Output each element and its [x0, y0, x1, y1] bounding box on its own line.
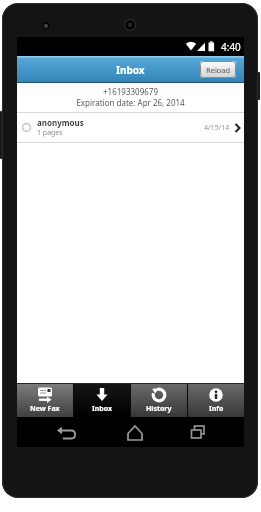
button[interactable]: Info: [188, 383, 244, 417]
staticText: Info: [209, 404, 224, 414]
staticText: New Fax: [30, 404, 60, 414]
button[interactable]: Inbox: [74, 383, 130, 417]
staticText: Inbox: [92, 404, 112, 414]
button[interactable]: Reload: [200, 61, 236, 78]
staticText: 4/15/14: [204, 123, 230, 133]
staticText: Expiration date: Apr 26, 2014: [17, 97, 244, 108]
staticText: anonymous: [37, 117, 84, 128]
button[interactable]: New Fax: [17, 383, 73, 417]
staticText: History: [146, 404, 172, 414]
button[interactable]: History: [131, 383, 187, 417]
staticText: 4:40: [221, 40, 241, 54]
staticText: Reload: [206, 65, 231, 75]
staticText: +16193309679: [17, 86, 244, 97]
staticText: Inbox: [116, 63, 145, 77]
button[interactable]: anonymous: [17, 112, 244, 143]
staticText: 1 pages: [37, 128, 63, 138]
